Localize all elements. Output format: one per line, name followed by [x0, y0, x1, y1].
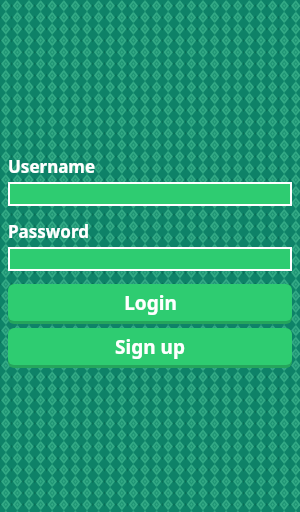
staticText: Password [8, 220, 89, 243]
staticText: Login [124, 290, 177, 316]
button[interactable]: Login [8, 284, 292, 324]
staticText: Username [8, 155, 96, 178]
button[interactable]: Password input [8, 247, 292, 271]
staticText: Sign up [115, 334, 185, 360]
button[interactable]: Sign up [8, 328, 292, 368]
button[interactable]: Username input [8, 182, 292, 206]
